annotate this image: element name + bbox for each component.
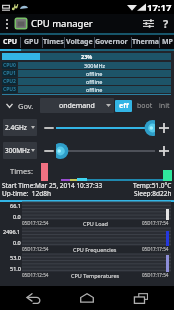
staticText: 05D17:17:54 — [142, 220, 169, 226]
staticText: Start Time:Mar 25, 2014 10:37:33 — [2, 181, 103, 189]
button[interactable]: Slider — [56, 143, 63, 159]
button[interactable]: Collapse — [4, 100, 15, 111]
staticText: ? — [163, 16, 169, 31]
button[interactable]: Governors — [95, 33, 131, 51]
staticText: 05D17:17:54 — [142, 246, 169, 252]
button[interactable]: Recent apps — [120, 286, 162, 310]
staticText: boot — [137, 101, 153, 111]
button[interactable]: Home — [66, 286, 108, 310]
staticText: offline — [86, 78, 103, 85]
button[interactable]: Decrease — [42, 121, 55, 134]
button[interactable]: CPU3 — [2, 86, 171, 93]
button[interactable]: More options — [0, 14, 13, 33]
staticText: Times: — [10, 166, 33, 176]
staticText: 2496.1 — [3, 228, 21, 235]
button[interactable]: init — [158, 100, 170, 112]
button[interactable]: eff — [115, 100, 132, 112]
staticText: Times — [43, 37, 64, 47]
staticText: 66.1 — [10, 202, 21, 209]
button[interactable]: boot — [135, 100, 155, 112]
button[interactable]: Voltage — [65, 33, 94, 51]
staticText: CPU3 — [3, 86, 16, 93]
staticText: CPU Load — [83, 220, 108, 227]
staticText: GPU — [24, 37, 39, 47]
staticText: Gov. — [18, 101, 34, 111]
staticText: 05D17:12:54 — [22, 272, 49, 278]
staticText: Thermal — [132, 37, 159, 47]
button[interactable]: Thermal — [132, 33, 159, 51]
button[interactable]: Back — [12, 286, 54, 310]
staticText: eff — [119, 101, 129, 111]
staticText: Voltage — [66, 37, 93, 47]
staticText: ondemand — [59, 101, 95, 111]
staticText: 300MHz — [5, 146, 30, 155]
staticText: 53.0 — [10, 254, 21, 261]
staticText: CPU0 — [3, 62, 16, 69]
staticText: CPU Frequencies — [73, 246, 117, 253]
staticText: CPU — [3, 37, 18, 47]
staticText: 2.4GHz — [5, 123, 27, 132]
staticText: 23% — [81, 53, 93, 60]
staticText: 05D17:12:54 — [22, 246, 49, 252]
staticText: 0.0 — [13, 213, 21, 220]
staticText: CPU1 — [3, 70, 16, 77]
button[interactable]: CPU1 — [2, 70, 171, 77]
button[interactable]: CPU2 — [2, 78, 171, 85]
staticText: Governors — [95, 37, 131, 47]
staticText: MP — [162, 37, 173, 47]
staticText: 17:17 — [147, 1, 172, 14]
button[interactable]: Slider — [56, 120, 153, 136]
button[interactable]: Increase — [157, 144, 170, 157]
button[interactable]: 300MHz — [3, 142, 37, 159]
button[interactable]: MP — [160, 33, 174, 51]
staticText: Sleep:8d22h — [134, 189, 172, 197]
button[interactable]: CPU — [0, 33, 20, 51]
staticText: offline — [86, 86, 103, 93]
staticText: 300MHz — [84, 62, 106, 69]
button[interactable]: CPU0 — [2, 62, 171, 69]
button[interactable]: Decrease — [42, 144, 55, 157]
staticText: offline — [86, 70, 103, 77]
staticText: CPU2 — [3, 78, 16, 85]
button[interactable]: 2.4GHz — [3, 119, 37, 136]
staticText: 0.0 — [13, 239, 21, 246]
staticText: CPU Temperatures — [71, 272, 120, 279]
staticText: init — [159, 101, 170, 111]
button[interactable]: Help — [157, 14, 174, 33]
staticText: 05D17:12:54 — [22, 220, 49, 226]
staticText: 05D17:17:54 — [142, 272, 169, 278]
button[interactable]: GPU — [21, 33, 42, 51]
button[interactable]: Increase — [157, 121, 170, 134]
staticText: CPU manager — [31, 17, 93, 30]
staticText: Up-time: 12d8h — [2, 189, 51, 197]
button[interactable]: ondemand — [40, 98, 114, 113]
staticText: Temp:51.0°C — [133, 181, 172, 189]
staticText: 51.0 — [10, 265, 21, 272]
button[interactable]: Settings — [139, 14, 157, 33]
button[interactable]: Times — [43, 33, 64, 51]
